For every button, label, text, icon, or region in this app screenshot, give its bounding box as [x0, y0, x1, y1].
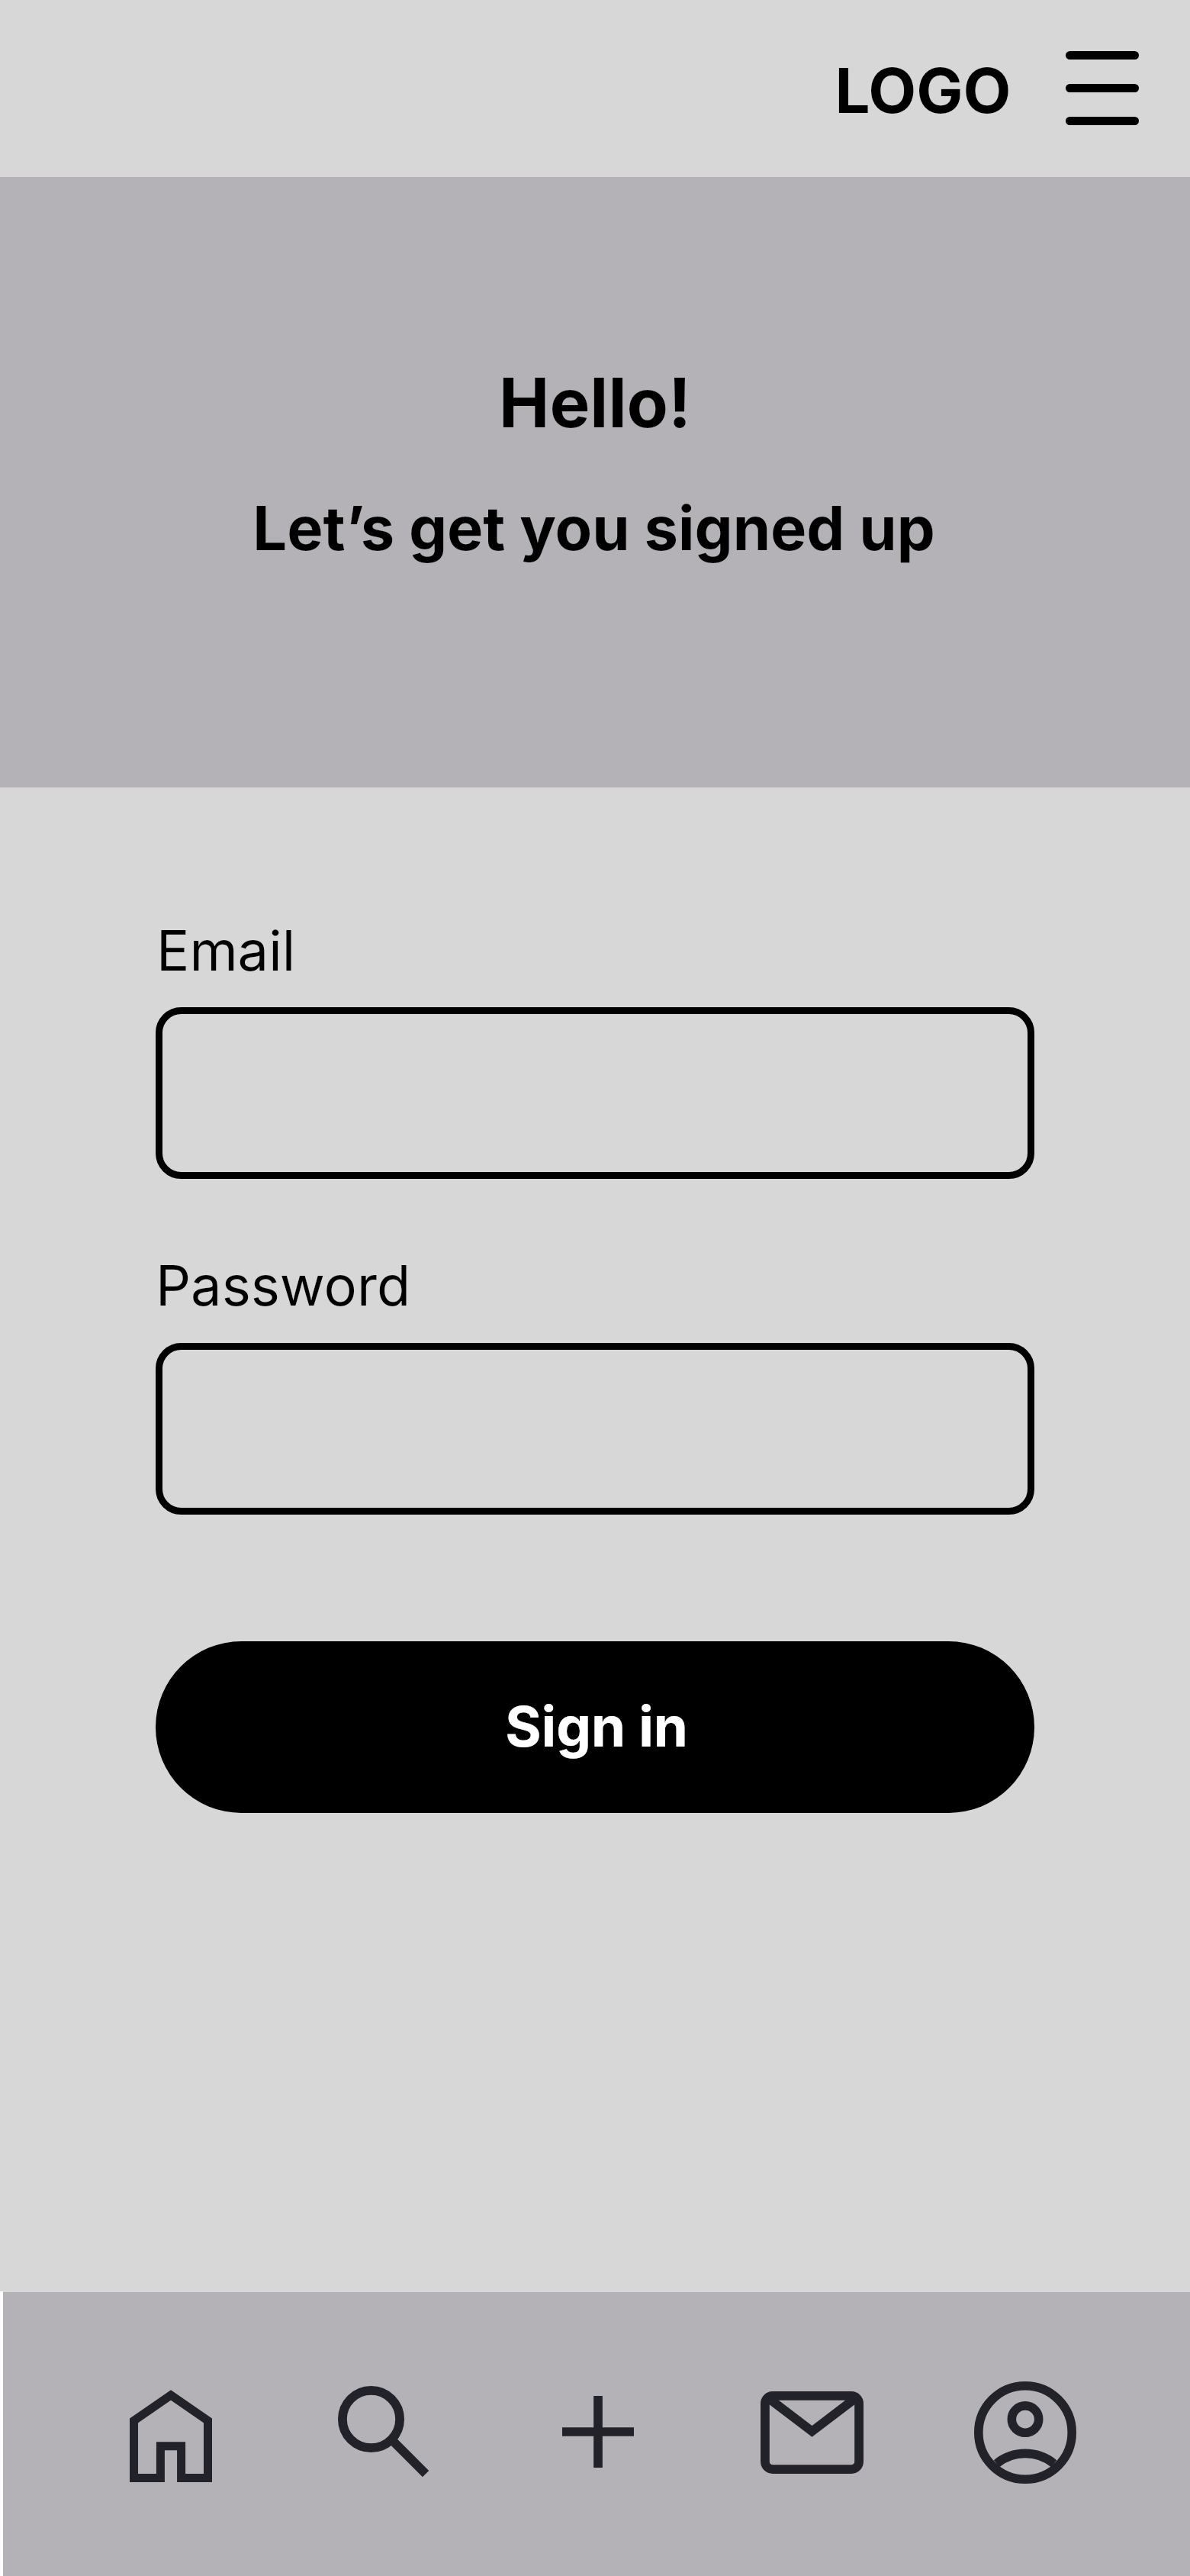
button[interactable]: Create post	[526, 2359, 671, 2504]
button[interactable]: Sign in	[156, 1641, 1034, 1813]
button[interactable]: Open navigation menu	[1007, 0, 1190, 177]
staticText: Email	[156, 917, 296, 984]
staticText: Password	[156, 1252, 411, 1319]
button[interactable]: Messages	[739, 2360, 884, 2505]
staticText: Sign in	[505, 1693, 688, 1760]
staticText: LOGO	[835, 53, 1011, 128]
button[interactable]: Home	[98, 2363, 243, 2508]
button[interactable]: Email input field	[156, 1007, 1034, 1179]
button[interactable]: Profile	[953, 2360, 1098, 2505]
staticText: Let’s get you signed up	[252, 491, 935, 565]
button[interactable]: Password input field	[156, 1343, 1034, 1515]
staticText: Hello!	[499, 362, 691, 443]
button[interactable]: Search	[311, 2359, 456, 2504]
button[interactable]: LOGO	[830, 0, 1007, 177]
